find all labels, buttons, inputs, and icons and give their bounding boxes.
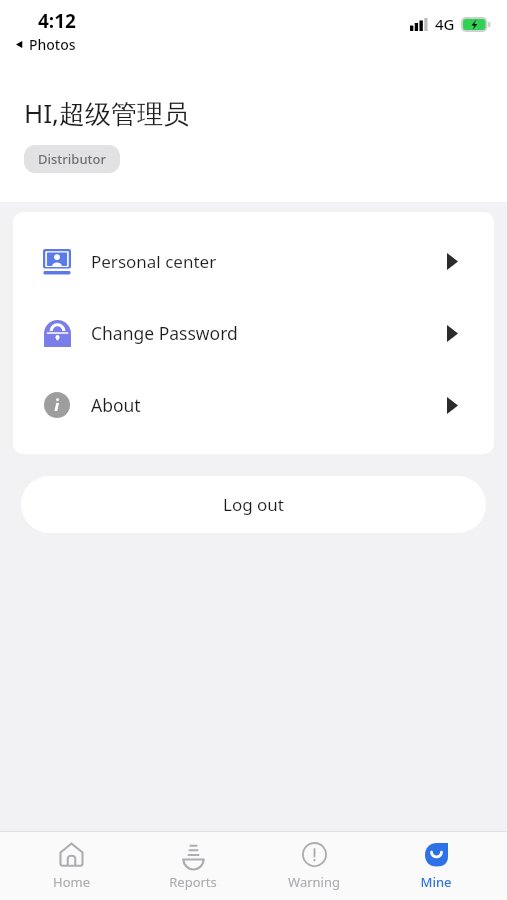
button[interactable]: Change Password: [13, 297, 494, 369]
button[interactable]: Mine: [386, 835, 486, 897]
other: Home: [59, 842, 84, 867]
button[interactable]: About: [13, 369, 494, 441]
button[interactable]: Reports: [143, 835, 243, 897]
staticText: About: [91, 393, 447, 417]
button[interactable]: Log out: [21, 476, 486, 533]
button[interactable]: Personal center: [13, 225, 494, 297]
staticText: Change Password: [91, 321, 447, 345]
staticText: Mine: [420, 873, 452, 891]
staticText: 4G: [435, 14, 455, 34]
other: Mine: [424, 842, 449, 867]
button[interactable]: Home: [21, 835, 121, 897]
staticText: Warning: [288, 873, 340, 891]
staticText: Home: [53, 873, 90, 891]
staticText: HI,超级管理员: [24, 95, 190, 131]
other: Reports: [181, 842, 206, 867]
staticText: 4:12: [38, 8, 76, 34]
other: Warning: [302, 842, 327, 867]
staticText: Distributor: [38, 150, 106, 168]
staticText: Personal center: [91, 250, 447, 273]
button[interactable]: Distributor: [24, 145, 120, 173]
button[interactable]: Warning: [264, 835, 364, 897]
staticText: Log out: [223, 493, 284, 516]
staticText: Photos: [29, 35, 76, 54]
staticText: Reports: [169, 873, 217, 891]
